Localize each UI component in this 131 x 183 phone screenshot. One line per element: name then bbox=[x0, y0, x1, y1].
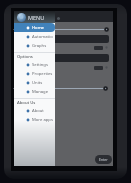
button[interactable]: Enter bbox=[95, 155, 112, 164]
staticText: Options bbox=[17, 54, 33, 60]
button[interactable] bbox=[94, 66, 103, 70]
button[interactable]: condition bbox=[14, 72, 33, 79]
staticText: Graphs bbox=[32, 43, 47, 49]
staticText: Settings bbox=[32, 62, 48, 68]
staticText: Units bbox=[32, 80, 43, 86]
button[interactable]: Manage accounts bbox=[14, 87, 55, 96]
button[interactable]: About Smart Tablet bbox=[14, 106, 55, 115]
staticText: Manage accounts bbox=[32, 89, 55, 95]
button[interactable] bbox=[94, 46, 103, 50]
staticText: About Us bbox=[17, 100, 36, 106]
button[interactable]: Edit bbox=[105, 46, 108, 49]
staticText: About Smart Tablet bbox=[32, 108, 55, 114]
button[interactable]: Automation Unit bbox=[14, 32, 55, 41]
staticText: Automation Unit bbox=[32, 34, 55, 40]
button[interactable]: Graphs bbox=[14, 41, 55, 50]
button[interactable]: Settings bbox=[14, 60, 55, 69]
button[interactable]: Units bbox=[14, 78, 55, 87]
button[interactable] bbox=[14, 35, 109, 43]
staticText: condition bbox=[17, 74, 31, 78]
button[interactable]: Edit bbox=[105, 66, 108, 69]
staticText: More apps bbox=[32, 117, 53, 123]
button[interactable]: Properties bbox=[14, 69, 55, 78]
staticText: MENU bbox=[28, 14, 45, 21]
staticText: Home Tasks bbox=[32, 25, 55, 31]
button[interactable]: Settings bbox=[56, 16, 61, 21]
button[interactable] bbox=[14, 54, 109, 62]
staticText: Properties bbox=[32, 71, 53, 77]
button[interactable]: More apps bbox=[14, 115, 55, 124]
button[interactable]: Home Tasks bbox=[14, 23, 55, 32]
staticText: Enter bbox=[99, 157, 108, 162]
